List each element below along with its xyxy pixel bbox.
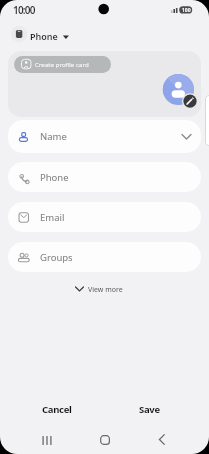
staticText: 10:00 (13, 3, 35, 17)
staticText: Email (40, 211, 65, 224)
staticText: 100 (182, 7, 191, 14)
staticText: Cancel (42, 403, 72, 416)
staticText: View more (88, 285, 123, 295)
staticText: Groups (40, 251, 73, 264)
staticText: Phone (40, 171, 69, 184)
staticText: Phone (30, 30, 58, 42)
staticText: Name (40, 130, 67, 143)
staticText: Create profile card (35, 60, 89, 68)
staticText: Save (139, 403, 160, 416)
